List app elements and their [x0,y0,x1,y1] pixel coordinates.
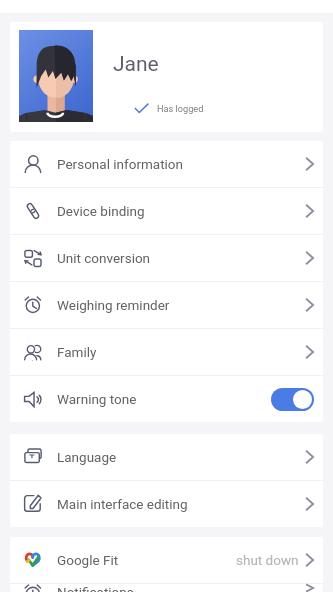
staticText: Weighing reminder [57,297,170,313]
button[interactable]: Jane [10,22,323,132]
staticText: Device binding [57,203,145,219]
staticText: Main interface editing [57,496,188,512]
button[interactable]: Personal information [10,141,323,187]
button[interactable]: Google Fit [10,537,323,583]
button[interactable]: Notifications [10,584,323,592]
staticText: Language [57,449,117,465]
button[interactable]: Warning tone [10,376,323,422]
staticText: Warning tone [57,391,137,407]
staticText: Has logged [157,103,204,114]
button[interactable]: Weighing reminder [10,282,323,328]
button[interactable]: Main interface editing [10,481,323,527]
button[interactable]: Warning tone toggle [271,388,314,411]
button[interactable]: Language [10,434,323,480]
button[interactable]: Family [10,329,323,375]
staticText: Notifications [57,584,134,592]
staticText: Unit conversion [57,250,151,266]
staticText: Google Fit [57,552,119,568]
button[interactable]: Unit conversion [10,235,323,281]
staticText: Family [57,344,97,360]
staticText: shut down [236,552,299,568]
staticText: Jane [113,52,159,77]
button[interactable]: Device binding [10,188,323,234]
staticText: Personal information [57,156,184,172]
